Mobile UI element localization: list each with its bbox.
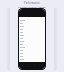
button[interactable] bbox=[19, 43, 45, 46]
button[interactable] bbox=[19, 34, 45, 37]
button[interactable] bbox=[19, 46, 45, 49]
button[interactable] bbox=[19, 19, 45, 22]
staticText: Performance bbox=[24, 1, 40, 4]
button[interactable] bbox=[19, 28, 45, 31]
button[interactable] bbox=[19, 37, 45, 40]
staticText: through smarter design bbox=[18, 5, 46, 8]
button[interactable]: App bar bbox=[19, 9, 45, 17]
button[interactable] bbox=[19, 55, 45, 58]
button[interactable]: Tab 1 bbox=[19, 62, 25, 69]
button[interactable] bbox=[19, 31, 45, 34]
button[interactable] bbox=[19, 40, 45, 43]
button[interactable] bbox=[19, 22, 45, 25]
button[interactable] bbox=[19, 52, 45, 55]
button[interactable] bbox=[19, 25, 45, 28]
button[interactable]: Tab 4 bbox=[38, 62, 45, 69]
button[interactable] bbox=[19, 49, 45, 52]
button[interactable] bbox=[19, 58, 45, 61]
